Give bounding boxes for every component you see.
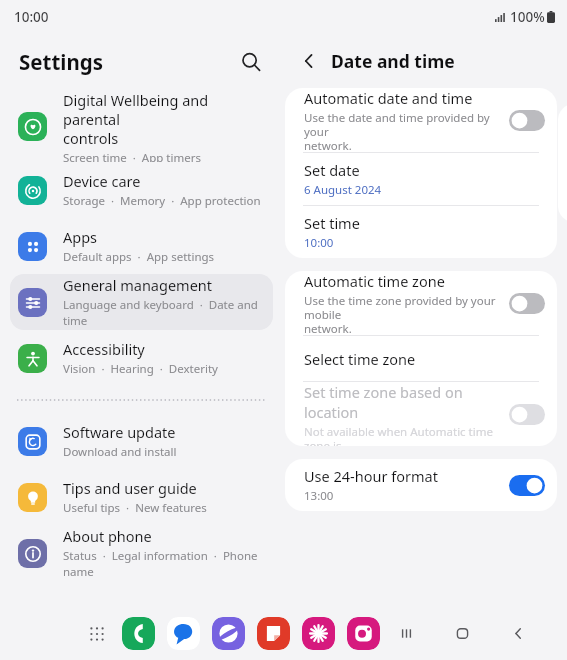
button[interactable]: Automatic date and time [285, 88, 557, 152]
button[interactable]: Tips and user guide [10, 469, 273, 525]
staticText: Storage · Memory · App protection [63, 193, 261, 209]
button[interactable]: Automatic time zone [285, 271, 557, 335]
staticText: Tips and user guide [63, 478, 197, 498]
staticText: Automatic time zone [304, 271, 445, 291]
staticText: Select time zone [304, 349, 416, 369]
staticText: Status · Legal information · Phone name [63, 548, 267, 580]
button[interactable]: Digital Wellbeing and parental controls [10, 90, 273, 162]
staticText: Screen time · App timers [63, 150, 201, 162]
button[interactable]: Recent apps [391, 618, 421, 648]
staticText: Use the date and time provided by your n… [304, 110, 503, 152]
button[interactable]: Internet [212, 617, 245, 650]
button[interactable]: Accessibility [10, 330, 273, 386]
button[interactable]: Notes [257, 617, 290, 650]
button[interactable]: Toggle off [509, 110, 545, 131]
button[interactable]: Set time [285, 206, 557, 258]
button[interactable]: Select time zone [285, 336, 557, 381]
staticText: Apps [63, 227, 98, 247]
button[interactable]: Set date [285, 153, 557, 205]
button[interactable]: Apps [10, 218, 273, 274]
staticText: 10:00 [304, 235, 334, 251]
staticText: 13:00 [304, 488, 334, 504]
button[interactable]: Toggle off [509, 404, 545, 425]
staticText: General management [63, 275, 213, 295]
staticText: 10:00 [14, 8, 49, 26]
staticText: 6 August 2024 [304, 182, 382, 198]
staticText: Useful tips · New features [63, 500, 207, 516]
staticText: Download and install [63, 444, 177, 460]
staticText: Use 24-hour format [304, 466, 438, 486]
staticText: About phone [63, 526, 152, 546]
button[interactable]: Software update [10, 413, 273, 469]
button[interactable]: Toggle on [509, 475, 545, 496]
button[interactable]: Device care [10, 162, 273, 218]
button[interactable]: About phone [10, 525, 273, 581]
button[interactable]: Messages [167, 617, 200, 650]
button[interactable]: All apps [82, 619, 112, 649]
button[interactable]: Toggle off [509, 293, 545, 314]
staticText: Automatic date and time [304, 88, 473, 108]
button[interactable]: Back [291, 43, 327, 79]
staticText: Accessibility [63, 339, 145, 359]
button[interactable]: Instagram [347, 617, 380, 650]
button[interactable]: Pinterest [302, 617, 335, 650]
staticText: Default apps · App settings [63, 249, 215, 265]
button[interactable]: Home [447, 618, 477, 648]
staticText: Settings [19, 48, 104, 76]
button[interactable]: Set time zone based on location [285, 382, 557, 446]
staticText: Set time zone based on location [304, 382, 503, 422]
staticText: 100% [510, 8, 545, 26]
button[interactable]: Back [503, 618, 533, 648]
staticText: Date and time [331, 49, 455, 73]
staticText: Software update [63, 422, 176, 442]
button[interactable]: Phone [122, 617, 155, 650]
staticText: Digital Wellbeing and parental controls [63, 90, 267, 148]
staticText: Set date [304, 160, 360, 180]
staticText: Set time [304, 213, 360, 233]
staticText: Device care [63, 171, 141, 191]
button[interactable]: General management [10, 274, 273, 330]
staticText: Not available when Automatic time zone i… [304, 424, 503, 446]
button[interactable]: Search [233, 44, 269, 80]
button[interactable]: Use 24-hour format [285, 459, 557, 511]
staticText: Vision · Hearing · Dexterity [63, 361, 218, 377]
staticText: Use the time zone provided by your mobil… [304, 293, 503, 335]
staticText: Language and keyboard · Date and time [63, 297, 267, 329]
